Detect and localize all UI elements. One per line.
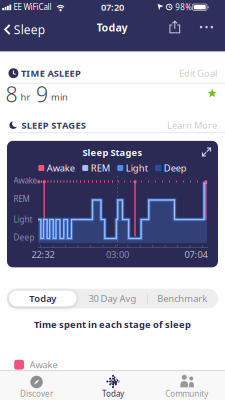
staticText: Discover (20, 388, 53, 399)
staticText: 03:00 (106, 248, 129, 261)
staticText: 07:04 (184, 248, 207, 261)
staticText: Today (102, 388, 124, 399)
button[interactable]: Community (157, 371, 217, 400)
staticText: Deep (164, 162, 187, 174)
staticText: Light (126, 162, 148, 174)
staticText: Community (165, 388, 208, 399)
staticText: Awake (13, 175, 37, 186)
staticText: TIME ASLEEP (21, 67, 81, 79)
staticText: 07:20 (101, 1, 124, 13)
staticText: 8 (5, 80, 17, 108)
staticText: Sleep (14, 21, 45, 37)
staticText: REM (13, 194, 29, 204)
button[interactable] (202, 147, 211, 157)
button[interactable]: TIME ASLEEP (0, 62, 225, 84)
staticText: Today (29, 292, 56, 305)
staticText: REM (91, 162, 110, 174)
staticText: SLEEP STAGES (21, 119, 86, 131)
staticText: 22:32 (31, 248, 54, 261)
staticText: Awake (29, 358, 57, 371)
staticText: 98% (175, 2, 192, 12)
staticText: min (51, 91, 68, 103)
staticText: Edit Goal (179, 67, 217, 79)
button[interactable]: Sleep (0, 18, 48, 40)
button[interactable]: Discover (7, 371, 67, 400)
staticText: Benchmark (157, 292, 207, 305)
staticText: Awake (47, 162, 75, 174)
button[interactable]: Awake (0, 358, 225, 372)
button[interactable]: Benchmark (147, 289, 217, 308)
staticText: Time spent in each stage of sleep (34, 318, 191, 330)
staticText: Light (13, 214, 32, 225)
staticText: 30 Day Avg (88, 292, 136, 305)
button[interactable]: Today (83, 371, 143, 400)
staticText: 9 (36, 80, 48, 108)
button[interactable]: SLEEP STAGES (0, 114, 225, 136)
staticText: Deep (13, 232, 34, 243)
staticText: Learn More (167, 119, 217, 131)
staticText: Today (96, 20, 127, 34)
staticText: EE WiFiCall (13, 2, 51, 12)
button[interactable]: Today (8, 289, 78, 308)
staticText: hr (20, 91, 30, 103)
staticText: Sleep Stages (82, 146, 142, 158)
button[interactable] (195, 17, 217, 37)
button[interactable] (165, 17, 185, 37)
button[interactable]: 30 Day Avg (77, 289, 147, 308)
